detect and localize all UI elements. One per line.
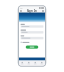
staticText: Sign In <box>27 9 37 13</box>
button[interactable]: Tab <box>32 62 38 64</box>
staticText: 9:41 <box>20 7 23 9</box>
button[interactable] <box>21 45 43 49</box>
button[interactable]: Back <box>20 10 22 12</box>
button[interactable]: Tab <box>19 62 25 64</box>
button[interactable]: Tab <box>38 62 45 64</box>
button[interactable]: Tab <box>25 62 32 64</box>
